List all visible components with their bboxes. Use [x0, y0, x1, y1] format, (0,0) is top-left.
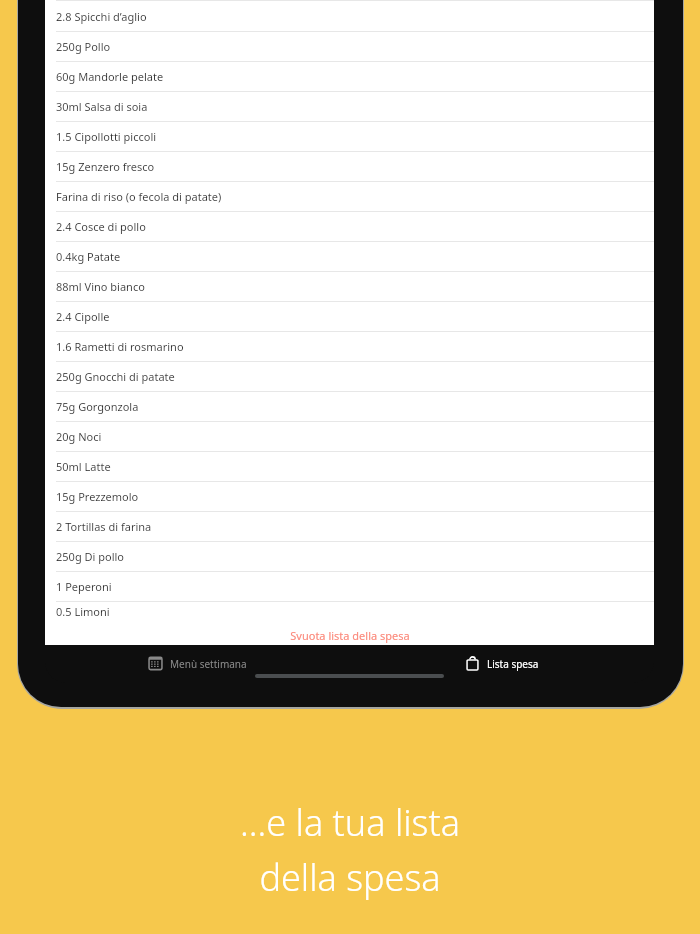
staticText: 2.8 Spicchi d’aglio [56, 9, 147, 24]
staticText: 1.6 Rametti di rosmarino [56, 339, 184, 354]
staticText: 15g Zenzero fresco [56, 159, 155, 174]
staticText: 0.5 Limoni [56, 604, 110, 617]
staticText: 60g Mandorle pelate [56, 69, 164, 84]
button[interactable]: 50ml Latte [45, 452, 654, 482]
button[interactable]: 30ml Salsa di soia [45, 92, 654, 122]
staticText: 2 Tortillas di farina [56, 519, 152, 534]
button[interactable]: 1 Peperoni [45, 572, 654, 602]
button[interactable]: 2.8 Spicchi d’aglio [45, 2, 654, 32]
staticText: della spesa [259, 853, 441, 902]
staticText: Lista spesa [487, 657, 539, 671]
button[interactable]: 2.4 Cosce di pollo [45, 212, 654, 242]
button[interactable]: 20g Noci [45, 422, 654, 452]
button[interactable]: Svuota lista della spesa [45, 626, 654, 645]
other: Lista spesa [464, 655, 481, 672]
staticText: 2.4 Cipolle [56, 309, 110, 324]
other: Menù settimana [147, 655, 164, 672]
staticText: 2.4 Cosce di pollo [56, 219, 146, 234]
staticText: 1 Peperoni [56, 579, 112, 594]
button[interactable]: 2 Tortillas di farina [45, 512, 654, 542]
button[interactable]: 250g Pollo [45, 32, 654, 62]
staticText: 50ml Latte [56, 459, 111, 474]
button[interactable]: Lista spesa [349, 652, 654, 675]
staticText: 20g Noci [56, 429, 102, 444]
staticText: Menù settimana [170, 657, 247, 671]
staticText: 1.5 Cipollotti piccoli [56, 129, 157, 144]
staticText: 15g Prezzemolo [56, 489, 139, 504]
button[interactable]: 15g Zenzero fresco [45, 152, 654, 182]
staticText: 0.4kg Patate [56, 249, 121, 264]
button[interactable]: 88ml Vino bianco [45, 272, 654, 302]
staticText: Svuota lista della spesa [290, 628, 410, 643]
staticText: Farina di riso (o fecola di patate) [56, 189, 222, 204]
button[interactable]: 1.5 Cipollotti piccoli [45, 122, 654, 152]
button[interactable]: Farina di riso (o fecola di patate) [45, 182, 654, 212]
staticText: 75g Gorgonzola [56, 399, 139, 414]
button[interactable]: Menù settimana [45, 652, 349, 675]
staticText: 250g Di pollo [56, 549, 124, 564]
button[interactable]: 250g Gnocchi di patate [45, 362, 654, 392]
button[interactable]: 60g Mandorle pelate [45, 62, 654, 92]
button[interactable]: 250g Di pollo [45, 542, 654, 572]
button[interactable]: 15g Prezzemolo [45, 482, 654, 512]
staticText: 30ml Salsa di soia [56, 99, 148, 114]
button[interactable]: 2.4 Cipolle [45, 302, 654, 332]
staticText: 250g Gnocchi di patate [56, 369, 175, 384]
button[interactable]: 0.4kg Patate [45, 242, 654, 272]
button[interactable]: 1.6 Rametti di rosmarino [45, 332, 654, 362]
button[interactable]: 0.5 Limoni [45, 602, 654, 615]
staticText: 250g Pollo [56, 39, 111, 54]
button[interactable]: 75g Gorgonzola [45, 392, 654, 422]
staticText: 88ml Vino bianco [56, 279, 145, 294]
staticText: ...e la tua lista [240, 798, 460, 847]
